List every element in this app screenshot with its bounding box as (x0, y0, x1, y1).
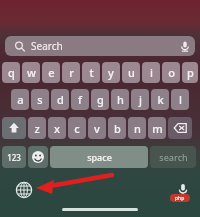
staticText: g (97, 92, 104, 107)
staticText: q (8, 65, 15, 80)
button[interactable]: f (71, 89, 89, 110)
button[interactable]: s (31, 89, 49, 110)
staticText: search (159, 151, 188, 163)
staticText: d (57, 92, 64, 107)
staticText: p (187, 65, 194, 80)
staticText: u (128, 65, 135, 80)
button[interactable]: Voice input (172, 178, 194, 200)
button[interactable]: y (102, 62, 120, 83)
staticText: n (134, 121, 141, 136)
staticText: h (117, 92, 124, 107)
button[interactable]: u (122, 62, 140, 83)
staticText: z (34, 121, 40, 136)
staticText: v (94, 121, 100, 136)
staticText: m (152, 121, 163, 136)
button[interactable]: c (68, 117, 86, 139)
staticText: a (17, 92, 24, 107)
staticText: t (89, 65, 94, 80)
staticText: w (27, 65, 36, 80)
button[interactable]: a (11, 89, 29, 110)
button[interactable]: t (82, 62, 100, 83)
button[interactable]: Search (5, 36, 195, 56)
button[interactable]: search (150, 146, 196, 168)
staticText: o (168, 65, 175, 80)
staticText: x (54, 121, 60, 136)
staticText: i (150, 65, 153, 80)
button[interactable]: g (91, 89, 109, 110)
button[interactable]: v (88, 117, 106, 139)
button[interactable]: d (51, 89, 69, 110)
button[interactable]: w (22, 62, 40, 83)
staticText: y (108, 65, 114, 80)
button[interactable]: m (148, 117, 166, 139)
button[interactable]: space (50, 146, 148, 168)
button[interactable]: z (28, 117, 46, 139)
button[interactable]: e (42, 62, 60, 83)
button[interactable]: r (62, 62, 80, 83)
button[interactable]: j (131, 89, 149, 110)
staticText: f (78, 92, 82, 107)
button[interactable]: 123 (2, 146, 26, 168)
button[interactable]: Backspace (168, 117, 192, 139)
staticText: space (87, 151, 112, 163)
button[interactable]: n (128, 117, 146, 139)
staticText: b (114, 121, 121, 136)
staticText: l (179, 92, 182, 107)
button[interactable]: o (162, 62, 180, 83)
button[interactable]: Change keyboard language (14, 180, 34, 200)
staticText: j (139, 92, 142, 107)
button[interactable]: x (48, 117, 66, 139)
button[interactable]: h (111, 89, 129, 110)
button[interactable]: Emoji (28, 146, 48, 168)
button[interactable]: l (171, 89, 189, 110)
button[interactable]: b (108, 117, 126, 139)
button[interactable]: k (151, 89, 169, 110)
staticText: e (48, 65, 55, 80)
staticText: c (74, 121, 80, 136)
button[interactable]: p (182, 62, 198, 83)
staticText: php (175, 195, 185, 202)
button[interactable]: Voice search (175, 36, 195, 56)
button[interactable]: q (2, 62, 20, 83)
staticText: 123 (7, 152, 21, 163)
staticText: k (157, 92, 164, 107)
staticText: s (37, 92, 43, 107)
staticText: r (69, 65, 74, 80)
button[interactable]: i (142, 62, 160, 83)
button[interactable]: Shift (2, 117, 26, 139)
staticText: Search (31, 39, 63, 53)
